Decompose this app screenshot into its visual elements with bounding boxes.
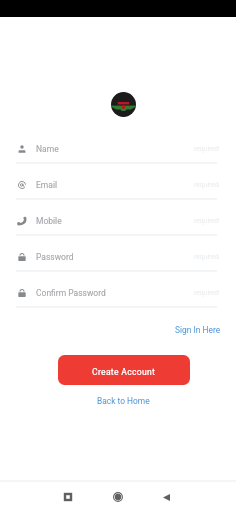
staticText: Create Account bbox=[92, 367, 156, 377]
button[interactable]: Name bbox=[0, 134, 236, 170]
staticText: Mobile bbox=[36, 216, 62, 226]
staticText: required bbox=[194, 181, 219, 189]
button[interactable]: Back bbox=[154, 485, 178, 509]
button[interactable]: Sign In Here bbox=[158, 325, 236, 335]
button[interactable]: Confirm Password bbox=[0, 278, 236, 314]
button[interactable]: Mobile bbox=[0, 206, 236, 242]
button[interactable]: Home bbox=[106, 485, 130, 509]
staticText: required bbox=[194, 289, 219, 297]
staticText: Back to Home bbox=[97, 396, 150, 406]
staticText: Sign In Here bbox=[175, 325, 221, 335]
button[interactable]: Create Account bbox=[58, 355, 190, 385]
staticText: Name bbox=[36, 144, 59, 154]
staticText: required bbox=[194, 145, 219, 153]
staticText: Confirm Password bbox=[36, 288, 106, 298]
staticText: required bbox=[194, 217, 219, 225]
button[interactable]: Back to Home bbox=[93, 392, 154, 410]
button[interactable]: Recents bbox=[56, 485, 80, 509]
button[interactable]: Email bbox=[0, 170, 236, 206]
button[interactable]: Password bbox=[0, 242, 236, 278]
staticText: Password bbox=[36, 252, 74, 262]
staticText: Email bbox=[36, 180, 58, 190]
staticText: required bbox=[194, 253, 219, 261]
